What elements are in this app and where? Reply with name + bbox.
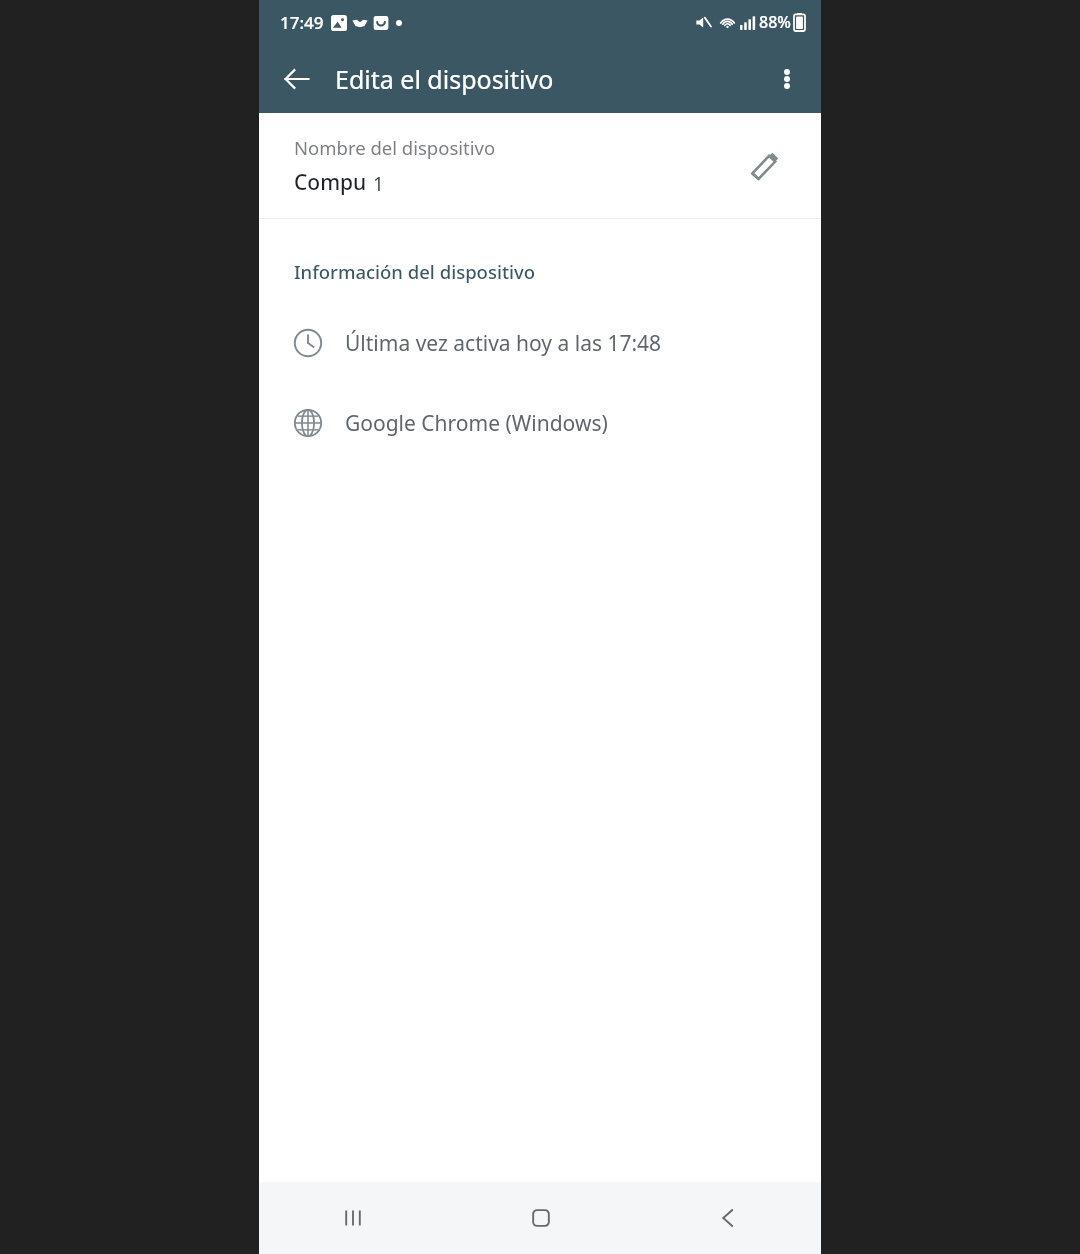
button[interactable]: Back <box>273 55 321 103</box>
button[interactable]: Google Chrome (Windows) <box>259 394 821 452</box>
staticText: Edita el dispositivo <box>335 62 554 96</box>
staticText: Información del dispositivo <box>294 259 536 284</box>
button[interactable]: More options <box>763 55 811 103</box>
button[interactable]: Home <box>447 1182 634 1254</box>
button[interactable]: Nombre del dispositivo <box>259 113 821 218</box>
button[interactable]: Back <box>634 1182 821 1254</box>
button[interactable]: Recent apps <box>259 1182 447 1254</box>
staticText: 1 <box>373 171 384 197</box>
staticText: Nombre del dispositivo <box>294 135 496 160</box>
staticText: Última vez activa hoy a las 17:48 <box>345 329 662 358</box>
button[interactable]: Última vez activa hoy a las 17:48 <box>259 314 821 372</box>
staticText: 17:49 <box>280 11 324 34</box>
staticText: Google Chrome (Windows) <box>345 409 608 438</box>
staticText: Compu <box>294 168 367 197</box>
staticText: 88% <box>759 11 791 33</box>
button[interactable]: Edit device name <box>739 140 791 192</box>
